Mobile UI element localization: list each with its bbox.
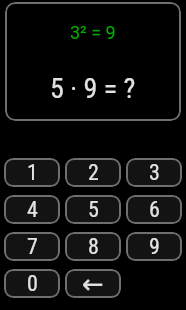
button[interactable]: 7 (4, 232, 60, 261)
button[interactable]: 4 (4, 195, 60, 224)
staticText: 0 (27, 271, 38, 297)
button[interactable]: 2 (65, 158, 121, 187)
staticText: 6 (149, 197, 160, 223)
staticText: 9 (149, 234, 160, 260)
staticText: 7 (27, 234, 38, 260)
staticText: 3 (149, 160, 160, 186)
button[interactable]: 6 (126, 195, 182, 224)
staticText: 3² = 9 (70, 22, 116, 43)
staticText: ← (82, 269, 104, 298)
button[interactable]: 1 (4, 158, 60, 187)
button[interactable]: 9 (126, 232, 182, 261)
button[interactable]: 3 (126, 158, 182, 187)
button[interactable]: ← (65, 269, 121, 298)
staticText: 2 (88, 160, 99, 186)
staticText: 5 (88, 197, 99, 223)
button[interactable]: 5 (65, 195, 121, 224)
button[interactable]: 8 (65, 232, 121, 261)
button[interactable]: 0 (4, 269, 60, 298)
staticText: 8 (88, 234, 99, 260)
staticText: 4 (27, 197, 38, 223)
staticText: 1 (27, 160, 38, 186)
staticText: 5 · 9 = ? (50, 72, 136, 105)
